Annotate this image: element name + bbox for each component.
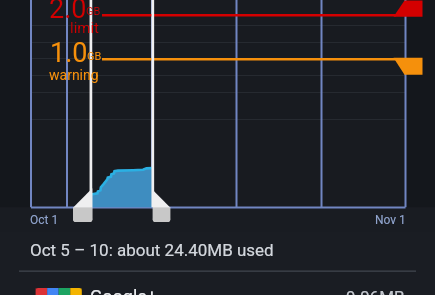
staticText: limit — [70, 19, 100, 37]
staticText: Oct 1 — [30, 213, 59, 227]
staticText: 1.0 — [50, 37, 88, 69]
button[interactable]: Oct 5 – 10: about 24.40MB used — [30, 240, 274, 260]
staticText: Nov 1 — [375, 213, 406, 227]
staticText: Oct 5 – 10: about 24.40MB used — [30, 240, 274, 260]
button[interactable]: 9.06MB — [346, 287, 405, 295]
staticText: 2.0 — [49, 0, 87, 25]
staticText: Google+ — [90, 286, 158, 295]
staticText: GB — [86, 5, 101, 18]
button[interactable]: Google+ — [90, 286, 158, 295]
staticText: warning — [49, 67, 99, 83]
staticText: 9.06MB — [346, 287, 405, 295]
staticText: GB — [87, 50, 102, 63]
